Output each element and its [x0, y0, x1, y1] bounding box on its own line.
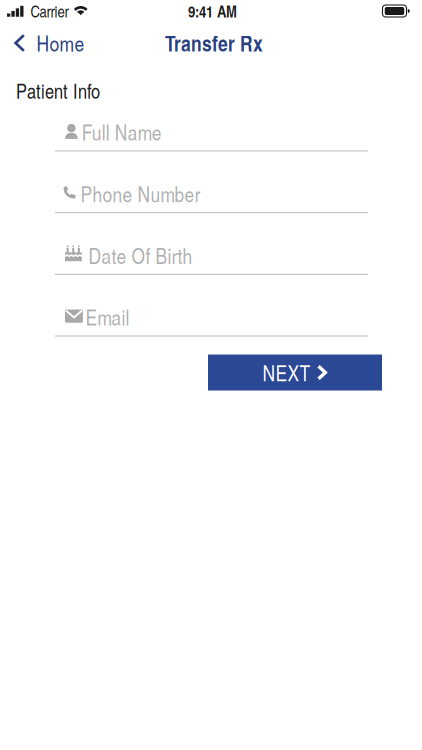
- staticText: Transfer Rx: [165, 28, 263, 58]
- staticText: NEXT: [262, 358, 310, 387]
- staticText: 9:41 AM: [188, 0, 237, 22]
- staticText: Home: [36, 28, 84, 58]
- staticText: Date Of Birth: [88, 241, 192, 270]
- button[interactable]: Home: [0, 29, 96, 57]
- staticText: Full Name: [82, 117, 162, 146]
- staticText: Phone Number: [80, 179, 200, 208]
- staticText: Email: [85, 302, 129, 332]
- button[interactable]: NEXT: [208, 354, 382, 390]
- staticText: Patient Info: [16, 77, 100, 104]
- staticText: Carrier: [30, 0, 68, 22]
